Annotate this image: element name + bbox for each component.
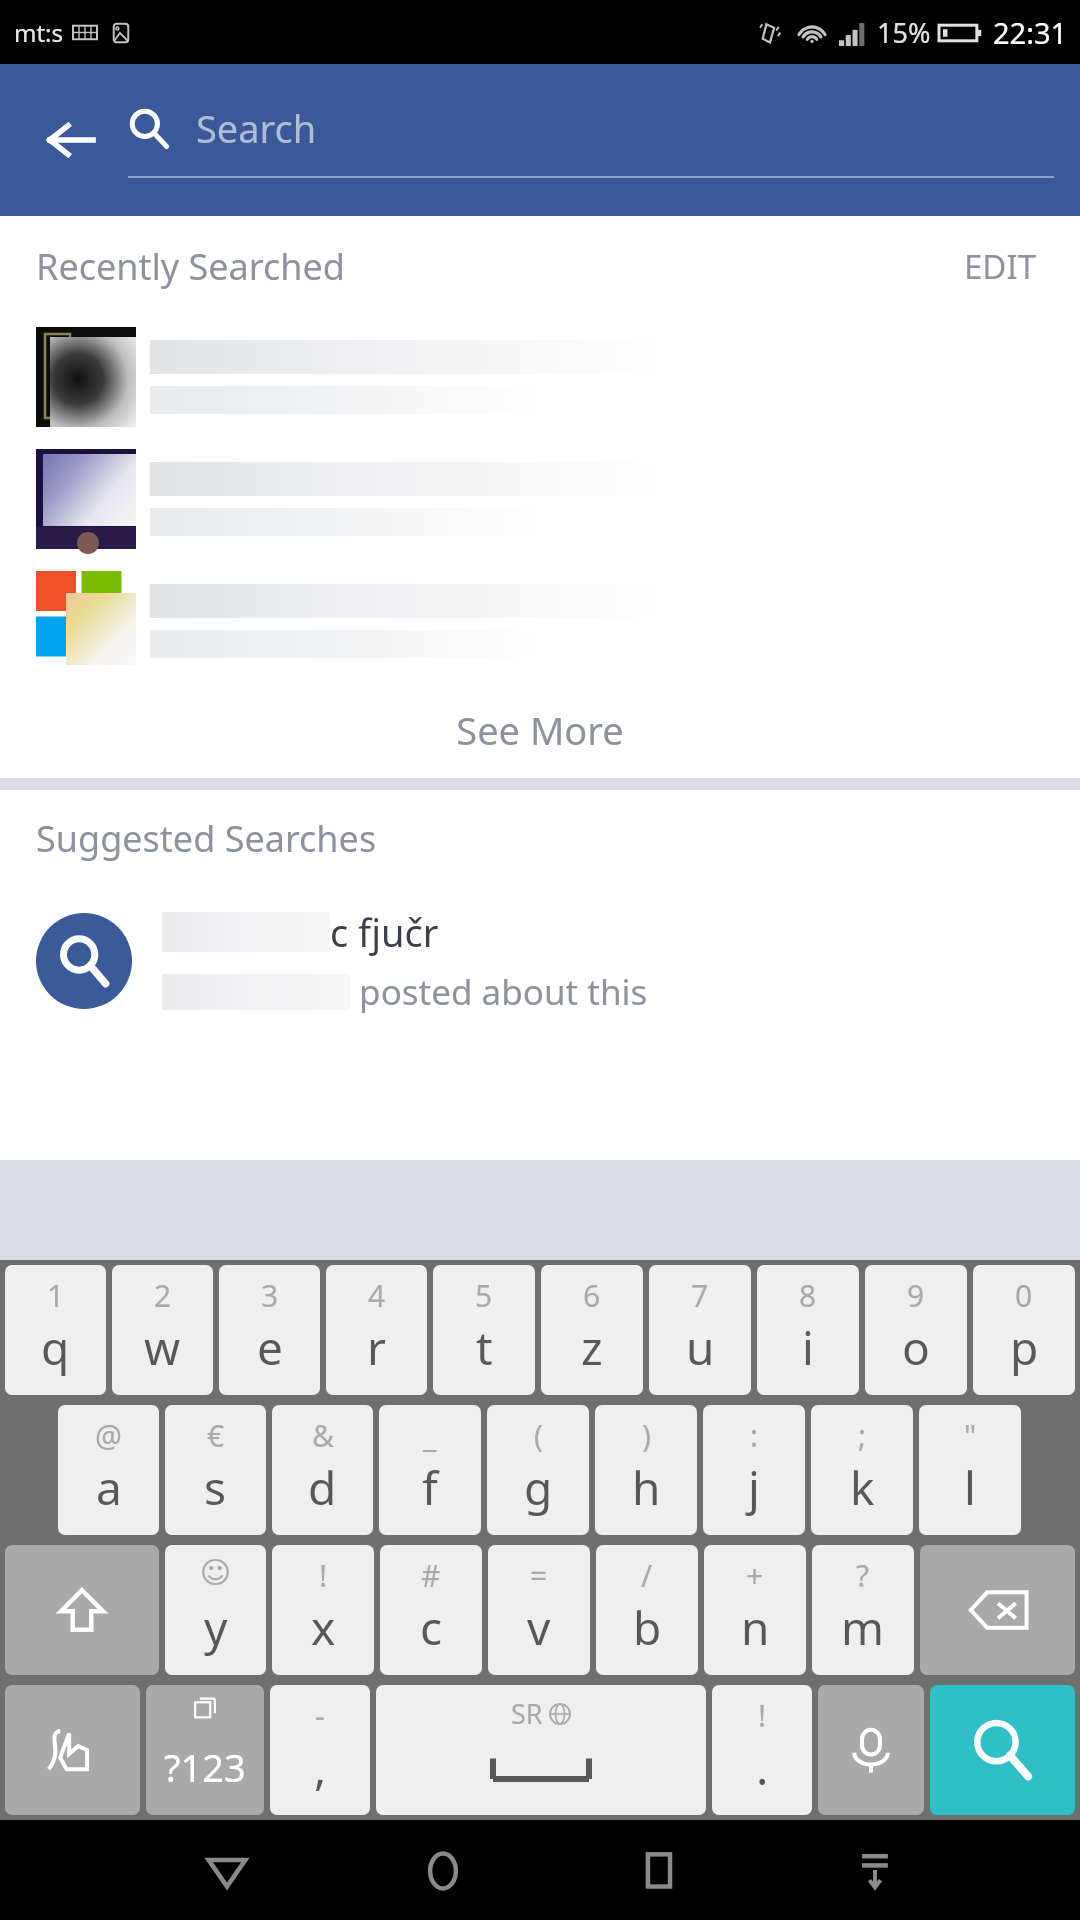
staticText: c fjučr (330, 906, 439, 958)
staticText: & (312, 1415, 334, 1456)
staticText: ?123 (164, 1741, 246, 1793)
button[interactable]: hand (5, 1685, 140, 1815)
button[interactable]: space (376, 1685, 706, 1815)
staticText: i (802, 1316, 814, 1379)
button[interactable]: ; (811, 1405, 913, 1535)
staticText: b (633, 1596, 662, 1659)
staticText: t (476, 1316, 493, 1379)
button[interactable] (0, 560, 1080, 682)
button[interactable]: Hide keyboard (767, 1820, 983, 1920)
button[interactable]: 0 (973, 1265, 1075, 1395)
staticText: @ (95, 1415, 122, 1456)
button[interactable]: 1 (5, 1265, 106, 1395)
button[interactable]: shift (5, 1545, 159, 1675)
staticText: _ (423, 1415, 437, 1456)
button[interactable]: @ (58, 1405, 159, 1535)
button[interactable]: ( (487, 1405, 589, 1535)
button[interactable]: / (596, 1545, 698, 1675)
button[interactable]: " (919, 1405, 1021, 1535)
staticText: g (524, 1456, 553, 1519)
button[interactable]: ) (595, 1405, 697, 1535)
button[interactable]: 6 (541, 1265, 643, 1395)
staticText: Recently Searched (36, 242, 345, 291)
button[interactable]: & (272, 1405, 373, 1535)
button[interactable]: Back (119, 1820, 335, 1920)
button[interactable]: Home (335, 1820, 551, 1920)
staticText: 22:31 (993, 13, 1068, 52)
button[interactable]: ! (712, 1685, 812, 1815)
staticText: ! (758, 1695, 767, 1736)
staticText: k (850, 1456, 875, 1519)
staticText: € (207, 1415, 225, 1456)
button[interactable] (0, 438, 1080, 560)
button[interactable]: 4 (326, 1265, 427, 1395)
staticText: l (964, 1456, 976, 1519)
staticText: 9 (907, 1275, 925, 1316)
button[interactable]: # (380, 1545, 482, 1675)
staticText: ) (642, 1415, 651, 1456)
button[interactable]: _ (379, 1405, 481, 1535)
staticText: x (311, 1596, 336, 1659)
staticText: y (204, 1596, 228, 1659)
button[interactable]: Back (34, 103, 108, 177)
staticText: 3 (261, 1275, 279, 1316)
button[interactable]: mic (818, 1685, 924, 1815)
staticText: e (257, 1316, 283, 1379)
staticText: 8 (799, 1275, 817, 1316)
staticText: See More (456, 704, 624, 756)
button[interactable]: - (270, 1685, 370, 1815)
button[interactable]: bksp (920, 1545, 1075, 1675)
staticText: s (204, 1456, 227, 1519)
button[interactable]: c fjučr (0, 886, 1080, 1036)
button[interactable]: 2 (112, 1265, 213, 1395)
staticText: 1 (47, 1275, 65, 1316)
staticText: Search (196, 102, 317, 154)
staticText: v (527, 1596, 551, 1659)
button[interactable]: € (165, 1405, 266, 1535)
staticText: ! (319, 1555, 328, 1596)
button[interactable]: See More (0, 682, 1080, 778)
staticText: 2 (154, 1275, 172, 1316)
staticText: j (748, 1456, 760, 1519)
button[interactable]: 9 (865, 1265, 967, 1395)
button[interactable]: ☺ (165, 1545, 266, 1675)
staticText: 0 (1015, 1275, 1033, 1316)
staticText: / (641, 1555, 653, 1596)
staticText: c (420, 1596, 443, 1659)
staticText: 15% (877, 14, 931, 51)
staticText: Suggested Searches (36, 814, 377, 863)
button[interactable]: search (930, 1685, 1075, 1815)
staticText: r (367, 1316, 386, 1379)
staticText: d (308, 1456, 337, 1519)
button[interactable]: 5 (433, 1265, 535, 1395)
button[interactable]: ? (812, 1545, 914, 1675)
staticText: SR (511, 1695, 543, 1732)
button[interactable]: EDIT (956, 236, 1044, 297)
staticText: ? (856, 1555, 870, 1596)
staticText: # (421, 1555, 441, 1596)
staticText: u (686, 1316, 715, 1379)
staticText: ; (858, 1415, 867, 1456)
button[interactable]: 7 (649, 1265, 751, 1395)
staticText: - (315, 1695, 325, 1736)
staticText: 7 (691, 1275, 709, 1316)
staticText: 6 (583, 1275, 601, 1316)
button[interactable]: 8 (757, 1265, 859, 1395)
button[interactable]: + (704, 1545, 806, 1675)
button[interactable]: 3 (219, 1265, 320, 1395)
staticText: mt:s (14, 16, 64, 49)
button[interactable]: : (703, 1405, 805, 1535)
button[interactable]: = (488, 1545, 590, 1675)
staticText: ☺ (200, 1555, 232, 1590)
staticText: z (581, 1316, 603, 1379)
button[interactable] (0, 316, 1080, 438)
staticText: h (632, 1456, 661, 1519)
staticText: m (841, 1596, 885, 1659)
button[interactable]: ?123 (146, 1685, 264, 1815)
staticText: " (964, 1415, 977, 1456)
staticText: ( (534, 1415, 543, 1456)
button[interactable]: ! (272, 1545, 374, 1675)
button[interactable]: Recents (551, 1820, 767, 1920)
staticText: f (422, 1456, 438, 1519)
staticText: : (750, 1415, 759, 1456)
